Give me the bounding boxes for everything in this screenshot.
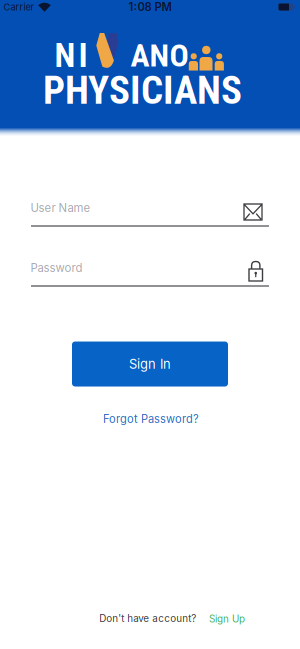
staticText: ANO [130, 37, 188, 74]
staticText: Sign In [129, 356, 171, 372]
staticText: User Name [30, 201, 90, 215]
staticText: Password [30, 261, 82, 275]
staticText: Sign Up [209, 613, 245, 625]
staticText: NI [54, 36, 87, 75]
button[interactable]: Password [31, 246, 269, 286]
button[interactable]: Forgot Password? [103, 412, 199, 426]
button[interactable]: Sign Up [209, 613, 245, 625]
staticText: Forgot Password? [103, 412, 199, 426]
button[interactable]: Sign In [72, 341, 228, 386]
staticText: 1:08 PM [128, 0, 171, 14]
staticText: PHYSICIANS [43, 68, 242, 113]
button[interactable]: User Name [31, 186, 269, 226]
staticText: Don't have account? [99, 612, 196, 624]
staticText: Carrier [3, 1, 34, 13]
